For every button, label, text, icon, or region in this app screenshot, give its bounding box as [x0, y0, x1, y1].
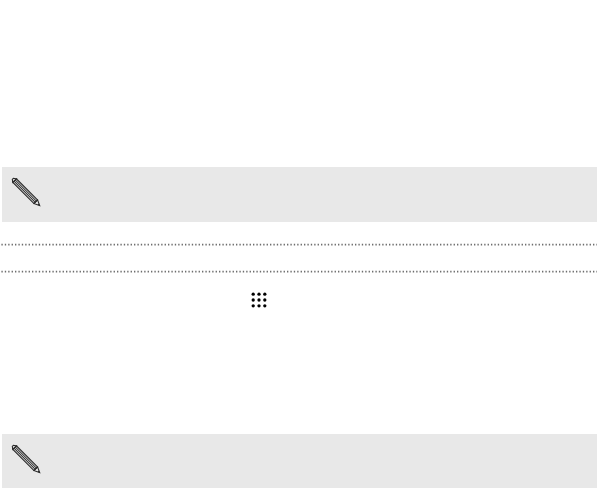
button[interactable]: Note — [2, 434, 597, 488]
button[interactable]: All apps — [247, 288, 271, 312]
button[interactable]: Note — [2, 167, 597, 222]
